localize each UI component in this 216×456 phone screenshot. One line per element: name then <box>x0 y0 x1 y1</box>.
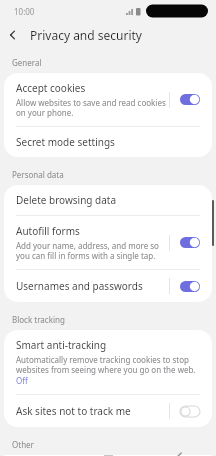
staticText: General <box>12 57 42 68</box>
button[interactable]: Delete browsing data <box>4 185 212 216</box>
button[interactable]: Autofill forms <box>4 216 212 270</box>
button[interactable]: Secret mode settings <box>4 127 212 157</box>
staticText: Add your name, address, and more so you … <box>16 240 159 261</box>
button[interactable]: Usernames and passwords <box>4 270 212 302</box>
staticText: Secret mode settings <box>16 135 115 149</box>
staticText: Personal data <box>12 169 64 180</box>
button[interactable]: Ask sites not to track me <box>4 395 212 427</box>
staticText: Block tracking <box>12 314 65 325</box>
button[interactable]: Customisation Service <box>4 455 212 456</box>
staticText: Off <box>16 375 28 386</box>
staticText: Privacy and security <box>30 27 142 43</box>
staticText: Allow websites to save and read cookies … <box>16 97 166 118</box>
button[interactable]: Accept cookies <box>4 73 212 127</box>
staticText: 10:00 <box>14 6 35 17</box>
staticText: Automatically remove tracking cookies to… <box>16 354 196 375</box>
staticText: Accept cookies <box>16 81 86 95</box>
button[interactable]: Smart anti-tracking <box>4 330 212 395</box>
staticText: Ask sites not to track me <box>16 404 131 418</box>
staticText: Smart anti-tracking <box>16 338 107 352</box>
staticText: Other <box>12 439 34 450</box>
staticText: Delete browsing data <box>16 193 117 207</box>
staticText: Usernames and passwords <box>16 279 143 293</box>
staticText: Autofill forms <box>16 224 80 238</box>
button[interactable]: Back <box>0 22 26 48</box>
